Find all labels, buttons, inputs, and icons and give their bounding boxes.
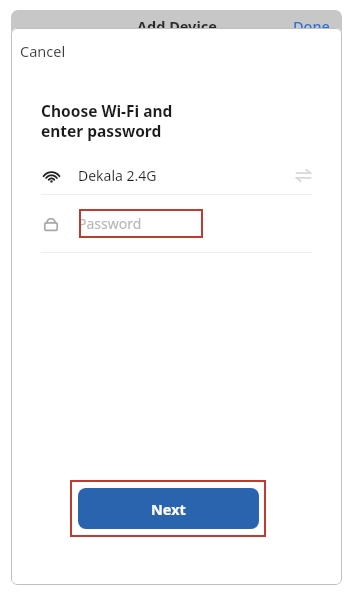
staticText: Add Device bbox=[137, 16, 217, 36]
other: Wi-Fi bbox=[41, 165, 62, 186]
other: Password bbox=[41, 214, 61, 234]
staticText: Choose Wi-Fi and enter password bbox=[41, 100, 173, 142]
staticText: Password bbox=[78, 214, 142, 233]
staticText: Next bbox=[151, 499, 186, 519]
button[interactable]: Next bbox=[78, 488, 259, 529]
staticText: Done bbox=[293, 16, 330, 36]
button[interactable]: Done bbox=[281, 11, 342, 39]
staticText: Dekala 2.4G bbox=[78, 166, 157, 185]
staticText: Cancel bbox=[20, 41, 66, 61]
button[interactable]: Cancel bbox=[11, 36, 82, 66]
button[interactable]: Switch network bbox=[295, 167, 312, 184]
button[interactable]: Password bbox=[11, 195, 342, 252]
button[interactable]: Wi-Fi bbox=[11, 156, 342, 194]
